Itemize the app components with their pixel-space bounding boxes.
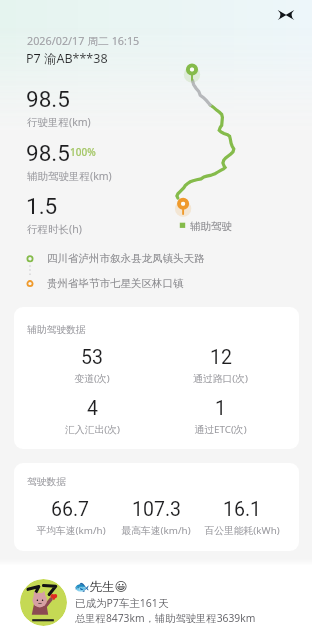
staticText: 16.1 — [223, 498, 262, 521]
staticText: 98.5 — [26, 86, 70, 112]
staticText: 1 — [215, 397, 226, 420]
button[interactable]: 辅助驾驶数据 — [14, 307, 299, 449]
staticText: 行程时长(h) — [27, 222, 82, 236]
staticText: 辅助驾驶里程(km) — [27, 169, 112, 183]
staticText: 107.3 — [132, 498, 181, 521]
staticText: 98.5 — [26, 140, 70, 166]
button[interactable]: Close — [271, 0, 300, 29]
staticText: 变道(次) — [74, 372, 110, 385]
staticText: 贵州省毕节市七星关区林口镇 — [47, 277, 184, 290]
staticText: P7 渝AB***38 — [26, 50, 108, 67]
staticText: 🐟先生😀 — [74, 579, 128, 595]
staticText: 总里程8473km，辅助驾驶里程3639km — [75, 611, 256, 625]
staticText: 2026/02/17 周二 16:15 — [27, 33, 140, 48]
staticText: 1.5 — [26, 193, 58, 219]
staticText: 最高车速(km/h) — [121, 524, 191, 537]
staticText: 100% — [70, 145, 96, 159]
button[interactable]: 🐟先生😀 — [0, 565, 312, 642]
button[interactable]: 驾驶数据 — [14, 463, 299, 551]
staticText: 行驶里程(km) — [27, 115, 91, 129]
staticText: 53 — [81, 346, 103, 369]
staticText: 12 — [210, 346, 232, 369]
staticText: 通过路口(次) — [193, 372, 248, 385]
staticText: 辅助驾驶数据 — [27, 324, 86, 336]
staticText: 已成为P7车主161天 — [75, 596, 169, 610]
staticText: 百公里能耗(kWh) — [204, 524, 280, 537]
staticText: 66.7 — [51, 498, 90, 521]
staticText: 通过ETC(次) — [194, 423, 247, 436]
staticText: 辅助驾驶 — [190, 220, 232, 233]
staticText: 驾驶数据 — [27, 476, 67, 488]
staticText: 4 — [87, 397, 98, 420]
staticText: 汇入汇出(次) — [65, 423, 120, 436]
staticText: 平均车速(km/h) — [36, 524, 106, 537]
staticText: 四川省泸州市叙永县龙凤镇头天路 — [47, 252, 205, 265]
